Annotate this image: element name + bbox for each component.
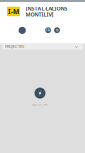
staticText: CA (46, 28, 50, 32)
staticText: ES (56, 28, 58, 32)
button[interactable]: Spanish (54, 27, 60, 33)
button[interactable]: Search (19, 27, 26, 34)
button[interactable]: PROJECTES (2, 43, 83, 49)
staticText: I-M (8, 7, 19, 16)
button[interactable]: Catalan (45, 27, 51, 33)
staticText: MONTILIVI (25, 11, 53, 18)
button[interactable]: ELECTRICITAT (22, 88, 58, 106)
staticText: INSTAL·LACIONS (25, 5, 67, 12)
staticText: ELECTRICITAT (32, 103, 48, 106)
staticText: PROJECTES (5, 44, 24, 49)
button[interactable]: I-M (7, 5, 67, 18)
